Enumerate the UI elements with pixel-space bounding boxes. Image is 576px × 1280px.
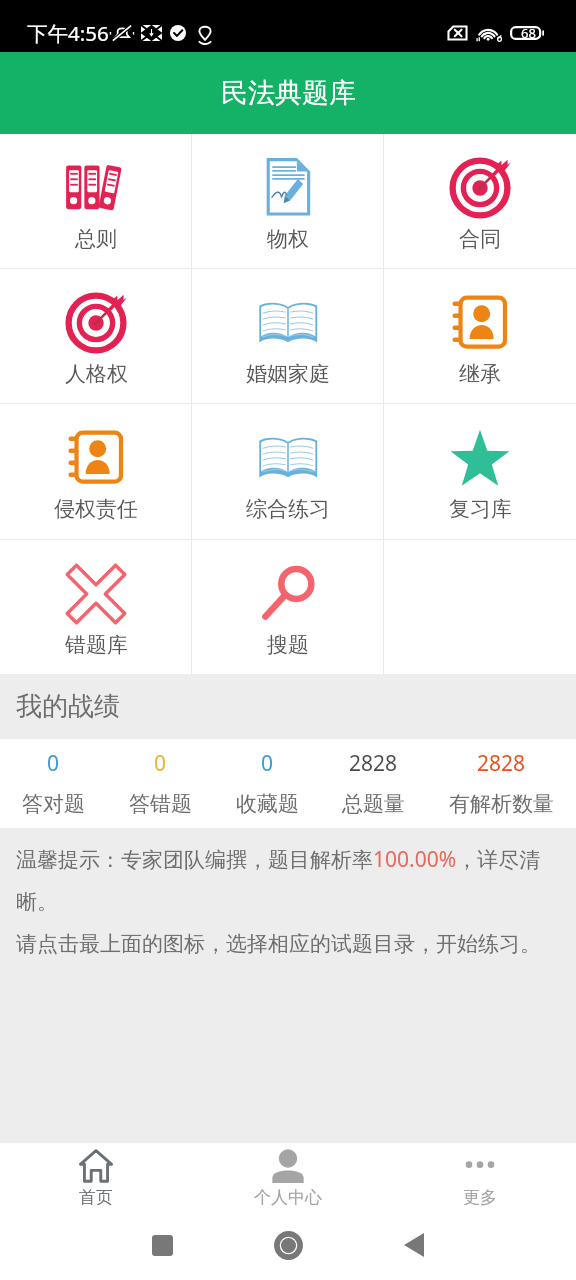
staticText: 搜题 xyxy=(267,632,309,658)
button[interactable]: 0 xyxy=(129,749,192,817)
staticText: 2828 xyxy=(349,749,398,778)
button[interactable]: 合同 xyxy=(384,134,576,268)
staticText: 首页 xyxy=(79,1187,113,1208)
staticText: 错题库 xyxy=(65,632,128,658)
staticText: 复习库 xyxy=(449,496,512,522)
button[interactable]: Recent apps xyxy=(146,1229,178,1261)
button[interactable]: 错题库 xyxy=(0,540,192,674)
button[interactable]: 0 xyxy=(22,749,85,817)
button[interactable]: 人格权 xyxy=(0,269,192,403)
staticText: 综合练习 xyxy=(246,496,330,522)
button[interactable]: 复习库 xyxy=(384,404,576,539)
button[interactable]: 综合练习 xyxy=(192,404,384,539)
staticText: 有解析数量 xyxy=(449,791,554,817)
staticText: 请点击最上面的图标，选择相应的试题目录，开始练习。 xyxy=(16,931,541,957)
staticText: 答对题 xyxy=(22,791,85,817)
button[interactable]: 2828 xyxy=(342,749,405,817)
button[interactable]: 继承 xyxy=(384,269,576,403)
staticText: 物权 xyxy=(267,226,309,252)
staticText: 个人中心 xyxy=(254,1187,322,1208)
staticText: 收藏题 xyxy=(236,791,299,817)
staticText: 总则 xyxy=(75,226,117,252)
staticText: 合同 xyxy=(459,226,501,252)
button[interactable]: 个人中心 xyxy=(192,1143,384,1215)
button[interactable]: 搜题 xyxy=(192,540,384,674)
button[interactable]: Home xyxy=(271,1228,305,1262)
staticText: 68 xyxy=(521,24,536,42)
button[interactable]: 2828 xyxy=(449,749,554,817)
staticText: 继承 xyxy=(459,361,501,387)
staticText: 总题量 xyxy=(342,791,405,817)
button[interactable]: 更多 xyxy=(384,1143,576,1215)
staticText: 人格权 xyxy=(65,361,128,387)
staticText: 0 xyxy=(47,749,60,778)
staticText: 下午4:56 xyxy=(27,19,109,47)
button[interactable]: 首页 xyxy=(0,1143,192,1215)
staticText: 0 xyxy=(261,749,274,778)
button[interactable]: 物权 xyxy=(192,134,384,268)
staticText: 民法典题库 xyxy=(221,76,356,110)
staticText: 婚姻家庭 xyxy=(246,361,330,387)
staticText: 我的战绩 xyxy=(16,690,120,723)
staticText: 2828 xyxy=(477,749,526,778)
staticText: 侵权责任 xyxy=(54,496,138,522)
staticText: 0 xyxy=(154,749,167,778)
button[interactable]: 0 xyxy=(236,749,299,817)
button[interactable]: 总则 xyxy=(0,134,192,268)
button[interactable]: 侵权责任 xyxy=(0,404,192,539)
button[interactable]: Back xyxy=(398,1229,430,1261)
staticText: 答错题 xyxy=(129,791,192,817)
button[interactable]: 婚姻家庭 xyxy=(192,269,384,403)
staticText: 温馨提示：专家团队编撰，题目解析率100.00%，详尽清晰。 xyxy=(16,845,560,916)
staticText: 更多 xyxy=(463,1187,497,1208)
